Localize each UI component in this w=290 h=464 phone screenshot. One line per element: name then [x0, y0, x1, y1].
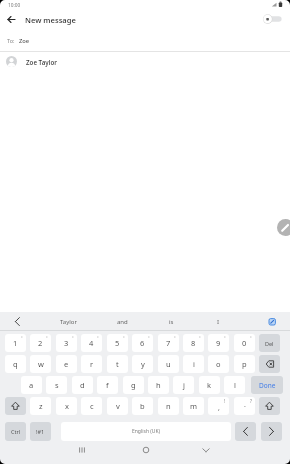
staticText: s — [55, 380, 59, 390]
button[interactable] — [6, 313, 28, 330]
button[interactable]: j — [173, 376, 194, 394]
staticText: ? — [250, 398, 252, 404]
button[interactable]: 2 — [30, 334, 51, 352]
button[interactable]: 7 — [158, 334, 179, 352]
staticText: b — [140, 401, 145, 411]
staticText: English (UK) — [132, 428, 161, 435]
staticText: j — [183, 380, 185, 390]
staticText: ° — [97, 335, 99, 340]
staticText: l — [234, 380, 236, 390]
staticText: 4 — [89, 338, 94, 348]
button[interactable]: r — [81, 355, 102, 373]
button[interactable]: q — [5, 355, 26, 373]
staticText: p — [242, 359, 247, 369]
button[interactable]: a — [21, 376, 42, 394]
button[interactable] — [4, 13, 19, 26]
button[interactable]: Zoe Taylor — [0, 53, 290, 70]
staticText: z — [39, 401, 43, 411]
staticText: ° — [148, 335, 150, 340]
staticText: r — [90, 359, 94, 369]
button[interactable]: c — [81, 397, 102, 415]
button[interactable]: Taylor — [48, 314, 88, 329]
staticText: I — [217, 318, 220, 326]
button[interactable]: e — [56, 355, 77, 373]
button[interactable]: 5 — [107, 334, 128, 352]
button[interactable]: b — [132, 397, 153, 415]
button[interactable]: English (UK) — [61, 422, 231, 441]
button[interactable]: 3 — [56, 334, 77, 352]
button[interactable]: 1 — [5, 334, 26, 352]
button[interactable] — [235, 422, 256, 441]
button[interactable]: l — [224, 376, 245, 394]
staticText: Del — [265, 340, 274, 347]
button[interactable]: 0 — [234, 334, 255, 352]
button[interactable]: 4 — [81, 334, 102, 352]
staticText: 2 — [38, 338, 43, 348]
button[interactable] — [265, 315, 279, 329]
staticText: ° — [199, 335, 201, 340]
button[interactable]: and — [102, 314, 142, 329]
button[interactable] — [198, 442, 214, 458]
button[interactable]: Ctrl — [5, 422, 26, 441]
button[interactable]: Done — [251, 376, 283, 394]
staticText: 3 — [64, 338, 69, 348]
staticText: ° — [250, 335, 252, 340]
staticText: 0 — [242, 338, 247, 348]
button[interactable] — [5, 397, 26, 415]
staticText: , — [218, 403, 220, 413]
button[interactable]: 8 — [183, 334, 204, 352]
button[interactable]: p — [234, 355, 255, 373]
button[interactable] — [277, 219, 290, 236]
staticText: ° — [123, 335, 125, 340]
staticText: f — [106, 380, 109, 390]
button[interactable]: g — [123, 376, 144, 394]
staticText: u — [166, 359, 171, 369]
button[interactable]: 9 — [208, 334, 229, 352]
staticText: ° — [174, 335, 176, 340]
button[interactable]: k — [199, 376, 220, 394]
staticText: is — [169, 318, 174, 326]
button[interactable]: h — [148, 376, 169, 394]
button[interactable]: v — [107, 397, 128, 415]
staticText: i — [193, 359, 195, 369]
button[interactable]: x — [56, 397, 77, 415]
staticText: a — [29, 380, 34, 390]
button[interactable]: f — [97, 376, 118, 394]
button[interactable]: , — [208, 397, 229, 415]
button[interactable]: z — [30, 397, 51, 415]
button[interactable]: . — [234, 397, 255, 415]
button[interactable]: t — [107, 355, 128, 373]
button[interactable]: o — [208, 355, 229, 373]
staticText: Taylor — [60, 318, 77, 326]
button[interactable] — [259, 355, 280, 373]
button[interactable]: y — [132, 355, 153, 373]
button[interactable]: s — [46, 376, 67, 394]
staticText: v — [116, 401, 120, 411]
button[interactable] — [74, 442, 90, 458]
staticText: To: — [7, 37, 15, 44]
button[interactable]: d — [72, 376, 93, 394]
staticText: g — [131, 380, 136, 390]
button[interactable] — [138, 442, 154, 458]
button[interactable]: is — [151, 314, 191, 329]
button[interactable]: w — [30, 355, 51, 373]
button[interactable] — [259, 397, 280, 415]
button[interactable]: To: — [0, 33, 290, 49]
button[interactable]: u — [158, 355, 179, 373]
button[interactable]: m — [183, 397, 204, 415]
button[interactable]: !#1 — [30, 422, 51, 441]
staticText: q — [13, 359, 18, 369]
staticText: 1 — [13, 338, 18, 348]
button[interactable]: I — [198, 314, 238, 329]
button[interactable] — [260, 12, 286, 26]
button[interactable] — [261, 422, 282, 441]
staticText: m — [190, 401, 198, 411]
button[interactable]: n — [158, 397, 179, 415]
staticText: y — [141, 359, 145, 369]
button[interactable]: Del — [259, 334, 280, 352]
button[interactable]: i — [183, 355, 204, 373]
staticText: ! — [224, 398, 226, 404]
staticText: Ctrl — [11, 428, 21, 435]
button[interactable]: 6 — [132, 334, 153, 352]
staticText: o — [216, 359, 221, 369]
